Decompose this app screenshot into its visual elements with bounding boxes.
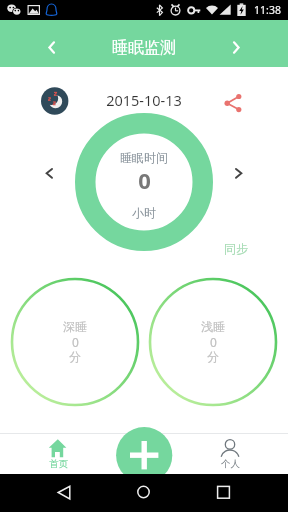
button[interactable]: Next day [218, 28, 256, 60]
button[interactable]: 个人 [172, 434, 288, 474]
button[interactable]: Add [116, 427, 173, 484]
button[interactable]: 同步 [216, 238, 256, 259]
staticText: 深睡 [63, 319, 87, 334]
staticText: 0 [210, 334, 217, 350]
staticText: 分 [207, 349, 219, 364]
staticText: 首页 [49, 458, 68, 470]
button[interactable]: 深睡 [11, 278, 139, 406]
staticText: 个人 [221, 458, 240, 470]
button[interactable]: Next [223, 157, 255, 189]
staticText: 2015-10-13 [106, 90, 182, 110]
staticText: 0 [138, 165, 151, 195]
button[interactable]: Share [220, 89, 248, 117]
staticText: 小时 [132, 205, 156, 220]
button[interactable]: 首页 [0, 434, 116, 474]
button[interactable]: 浅睡 [149, 278, 277, 406]
button[interactable]: Previous day [32, 28, 70, 60]
staticText: 11:38 [254, 3, 281, 17]
staticText: 0 [72, 334, 79, 350]
button[interactable]: Sleep mode [41, 87, 69, 115]
staticText: 分 [69, 349, 81, 364]
staticText: 睡眠时间 [120, 150, 168, 165]
staticText: 同步 [224, 241, 248, 256]
button[interactable]: Previous [33, 157, 65, 189]
staticText: 睡眠监测 [112, 38, 176, 58]
staticText: 浅睡 [201, 319, 225, 334]
